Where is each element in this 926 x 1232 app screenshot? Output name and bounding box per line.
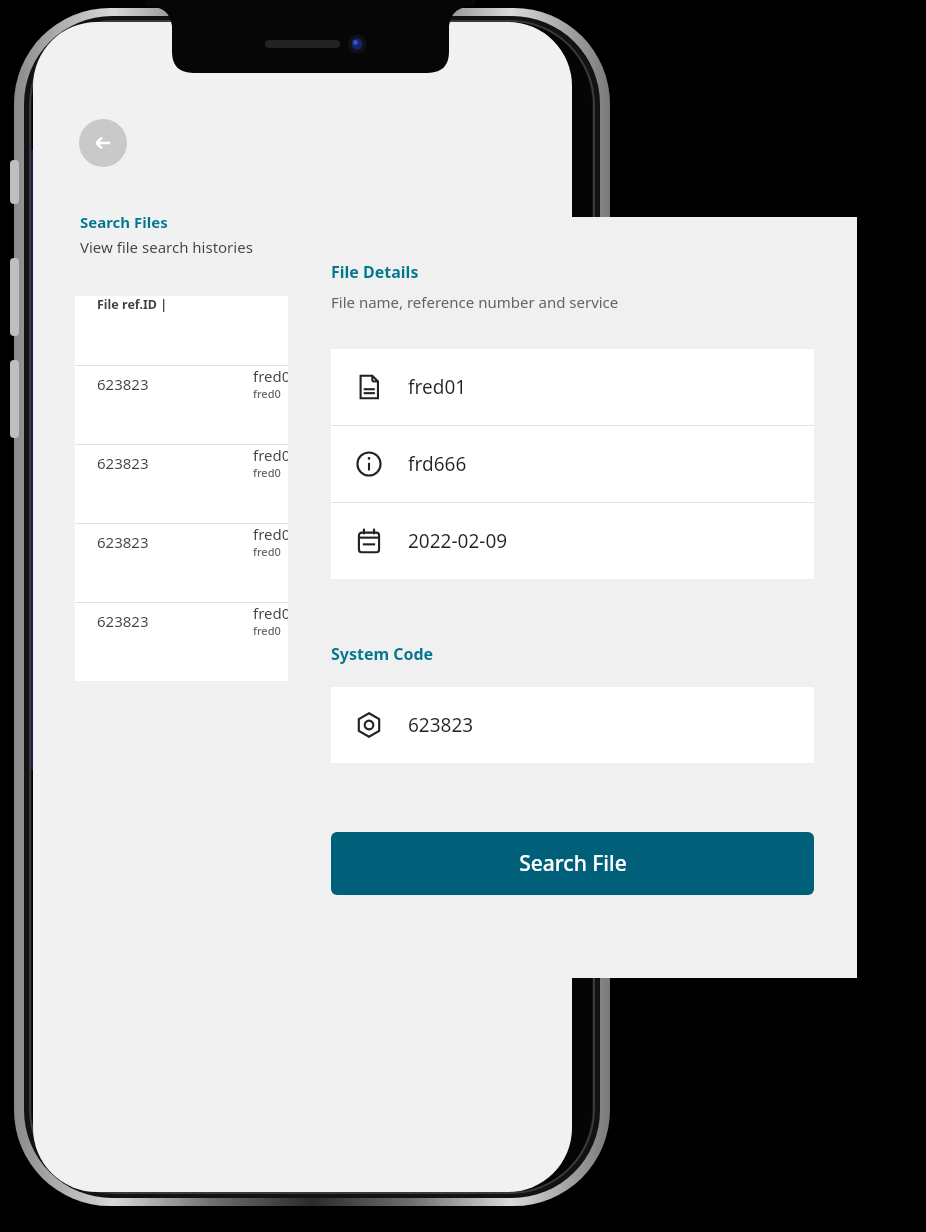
- button[interactable]: 623823: [75, 524, 535, 602]
- staticText: File name, reference number and service: [331, 292, 619, 312]
- button[interactable]: Search File: [331, 832, 814, 895]
- button[interactable]: 623823: [75, 366, 535, 444]
- staticText: 623823: [97, 611, 149, 631]
- staticText: fred0: [253, 623, 281, 638]
- staticText: 623823: [97, 453, 149, 473]
- button[interactable]: Reference number: [331, 426, 814, 502]
- button[interactable]: Back: [79, 119, 127, 167]
- button[interactable]: 623823: [75, 603, 535, 681]
- button[interactable]: System code: [331, 687, 814, 763]
- button[interactable]: File name: [331, 349, 814, 425]
- staticText: fred01: [253, 445, 299, 465]
- staticText: fred01: [253, 366, 299, 386]
- other: File name: [355, 373, 383, 401]
- staticText: 2022-02-09: [408, 528, 508, 554]
- button[interactable]: 623823: [75, 445, 535, 523]
- other: System code: [355, 711, 383, 739]
- staticText: File Details: [331, 261, 419, 283]
- staticText: fred01: [253, 524, 299, 544]
- staticText: View file search histories: [80, 237, 253, 257]
- staticText: 623823: [97, 532, 149, 552]
- staticText: fred0: [253, 386, 281, 401]
- staticText: Search Files: [80, 212, 168, 232]
- staticText: fred01: [253, 603, 299, 623]
- button[interactable]: Date: [331, 503, 814, 579]
- staticText: fred0: [253, 544, 281, 559]
- other: Reference number: [355, 450, 383, 478]
- staticText: 623823: [408, 712, 474, 738]
- staticText: File ref.ID |: [97, 296, 168, 313]
- staticText: System Code: [331, 643, 434, 665]
- staticText: fred0: [253, 465, 281, 480]
- staticText: frd666: [408, 451, 467, 477]
- staticText: fred01: [408, 374, 467, 400]
- staticText: 623823: [97, 374, 149, 394]
- staticText: Search File: [519, 849, 627, 878]
- other: Date: [355, 527, 383, 555]
